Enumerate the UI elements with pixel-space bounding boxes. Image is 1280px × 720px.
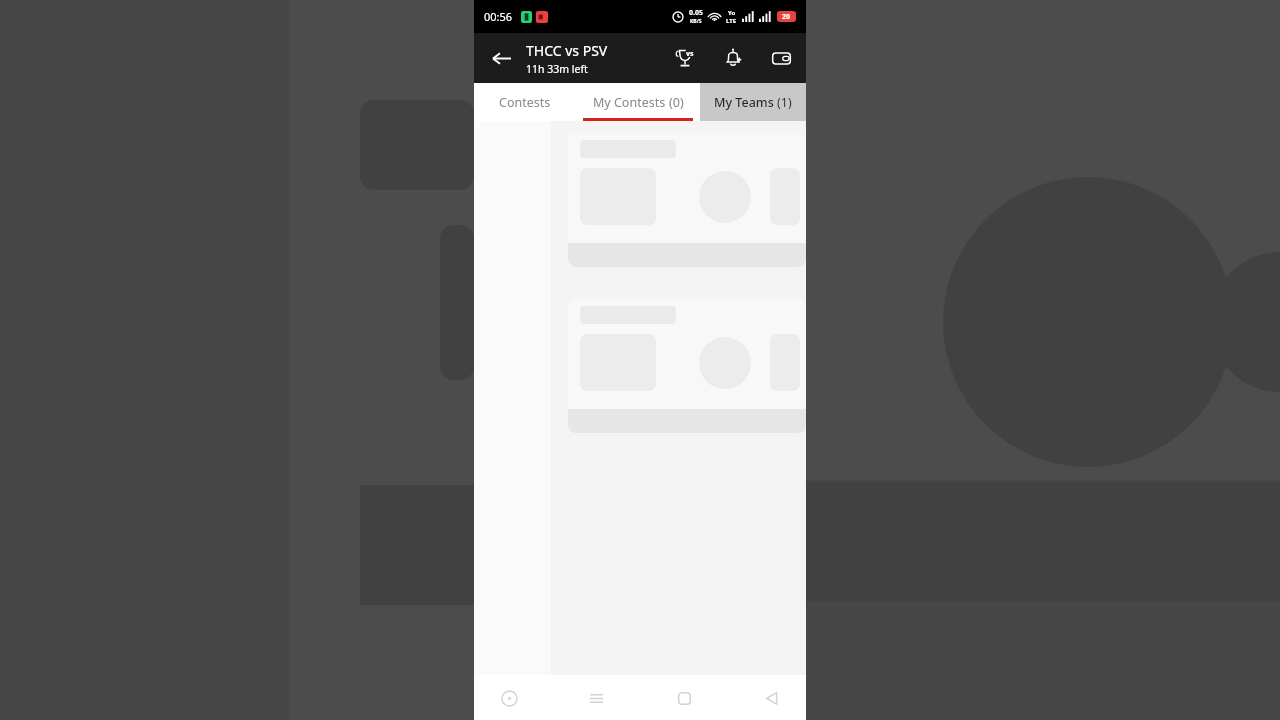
staticText: vs: [686, 49, 694, 59]
staticText: 0.05: [689, 8, 703, 18]
staticText: Contests: [499, 94, 551, 111]
staticText: My Teams: [714, 94, 774, 111]
button[interactable]: Home: [663, 677, 705, 719]
button[interactable]: Wallet: [766, 43, 796, 73]
button[interactable]: Contests: [474, 83, 576, 121]
button[interactable]: [568, 133, 806, 267]
button[interactable]: My Contests: [576, 83, 700, 121]
staticText: My Contests: [593, 94, 666, 111]
staticText: 20: [782, 12, 791, 22]
staticText: 11h 33m left: [526, 62, 588, 76]
button[interactable]: My Teams: [700, 83, 806, 121]
button[interactable]: Back: [486, 43, 516, 73]
staticText: THCC vs PSV: [526, 41, 608, 60]
staticText: LTE: [726, 17, 737, 25]
button[interactable]: [568, 299, 806, 433]
staticText: Yo: [728, 9, 736, 17]
button[interactable]: Assistant: [488, 677, 530, 719]
button[interactable]: Recents: [575, 677, 617, 719]
button[interactable]: Back: [750, 677, 792, 719]
staticText: (0): [669, 94, 684, 111]
staticText: 00:56: [484, 9, 513, 24]
button[interactable]: Notifications: [718, 43, 748, 73]
staticText: (1): [777, 94, 792, 111]
button[interactable]: Match contests: [670, 43, 700, 73]
staticText: KB/S: [690, 18, 702, 25]
